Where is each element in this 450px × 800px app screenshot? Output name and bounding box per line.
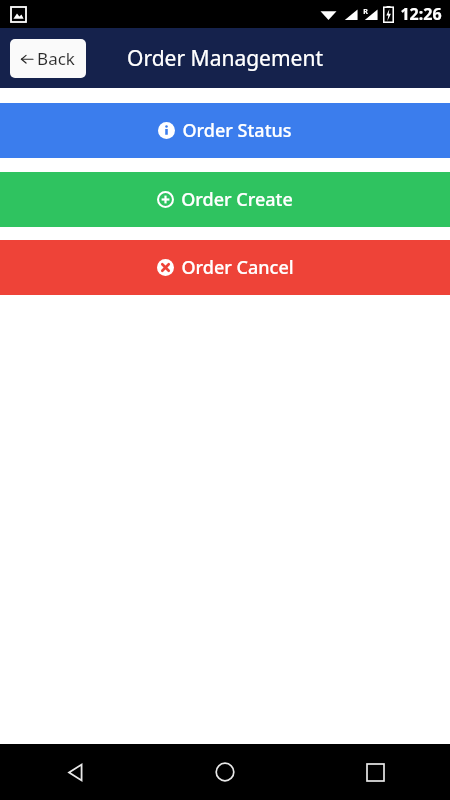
- staticText: Back: [37, 47, 75, 70]
- staticText: 12:26: [400, 3, 442, 25]
- staticText: Order Management: [127, 44, 323, 73]
- button[interactable]: Order Status: [0, 103, 450, 158]
- button[interactable]: Order Cancel: [0, 240, 450, 295]
- button[interactable]: Home: [150, 744, 300, 800]
- staticText: Order Status: [182, 118, 292, 143]
- staticText: R: [363, 7, 368, 17]
- button[interactable]: Back: [0, 744, 150, 800]
- button[interactable]: Back: [10, 39, 86, 78]
- button[interactable]: Order Create: [0, 172, 450, 227]
- staticText: Order Cancel: [181, 255, 294, 280]
- button[interactable]: Recent apps: [300, 744, 450, 800]
- staticText: Order Create: [181, 187, 293, 212]
